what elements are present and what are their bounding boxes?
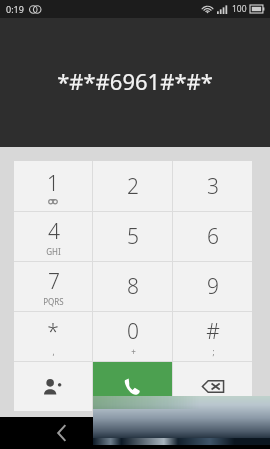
button[interactable]: 8 <box>93 262 172 311</box>
button[interactable]: 3 <box>173 161 252 211</box>
button[interactable]: # <box>173 312 252 361</box>
staticText: GHI <box>46 246 61 257</box>
button[interactable]: 4 <box>14 212 92 261</box>
staticText: 2 <box>127 172 139 201</box>
button[interactable]: 2 <box>93 161 172 211</box>
staticText: 5 <box>127 222 139 251</box>
staticText: # <box>206 317 220 346</box>
staticText: + <box>131 346 136 357</box>
button[interactable]: 0 <box>93 312 172 361</box>
staticText: 6 <box>207 222 219 251</box>
button[interactable]: 6 <box>173 212 252 261</box>
staticText: 0 <box>127 317 139 346</box>
staticText: 1 <box>47 169 59 198</box>
staticText: , <box>52 346 55 357</box>
staticText: * <box>47 317 59 346</box>
staticText: ; <box>212 346 215 357</box>
button[interactable]: * <box>14 312 92 361</box>
button[interactable]: 5 <box>93 212 172 261</box>
staticText: 8 <box>127 272 139 301</box>
staticText: *#*#6961#*#* <box>0 66 270 96</box>
button[interactable]: Add contact <box>14 362 92 411</box>
staticText: 9 <box>207 272 219 301</box>
button[interactable]: Backspace <box>173 362 252 411</box>
staticText: 3 <box>207 172 219 201</box>
staticText: 100 <box>232 3 247 15</box>
staticText: 4 <box>48 217 60 246</box>
staticText: 0:19 <box>6 3 24 15</box>
button[interactable]: 9 <box>173 262 252 311</box>
button[interactable]: Call <box>93 362 172 411</box>
button[interactable]: 1 <box>14 161 92 211</box>
button[interactable]: Back <box>45 417 79 449</box>
staticText: PQRS <box>43 296 64 307</box>
button[interactable]: 7 <box>14 262 92 311</box>
staticText: 7 <box>48 267 60 296</box>
